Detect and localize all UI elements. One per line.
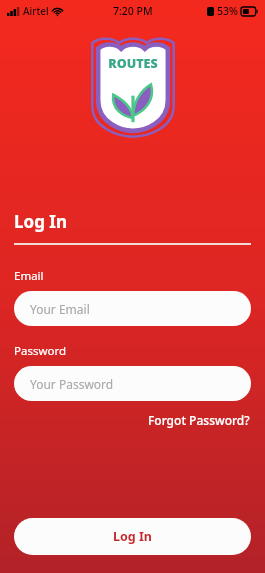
staticText: Forgot Password? (148, 412, 250, 428)
staticText: Log In (14, 210, 67, 233)
staticText: ROUTES (108, 55, 158, 72)
button[interactable]: Forgot Password? (146, 410, 252, 430)
staticText: Your Email (30, 301, 90, 317)
staticText: 53% (217, 4, 238, 18)
button[interactable]: Your Password (14, 366, 251, 401)
staticText: Airtel (23, 4, 49, 18)
staticText: Your Password (30, 376, 114, 392)
staticText: Email (14, 268, 44, 284)
staticText: Log In (113, 528, 152, 545)
staticText: 7:20 PM (113, 4, 153, 18)
other: Routes logo (91, 36, 175, 138)
button[interactable]: Your Email (14, 291, 251, 326)
staticText: Password (14, 343, 67, 359)
button[interactable]: Log In (14, 518, 251, 555)
